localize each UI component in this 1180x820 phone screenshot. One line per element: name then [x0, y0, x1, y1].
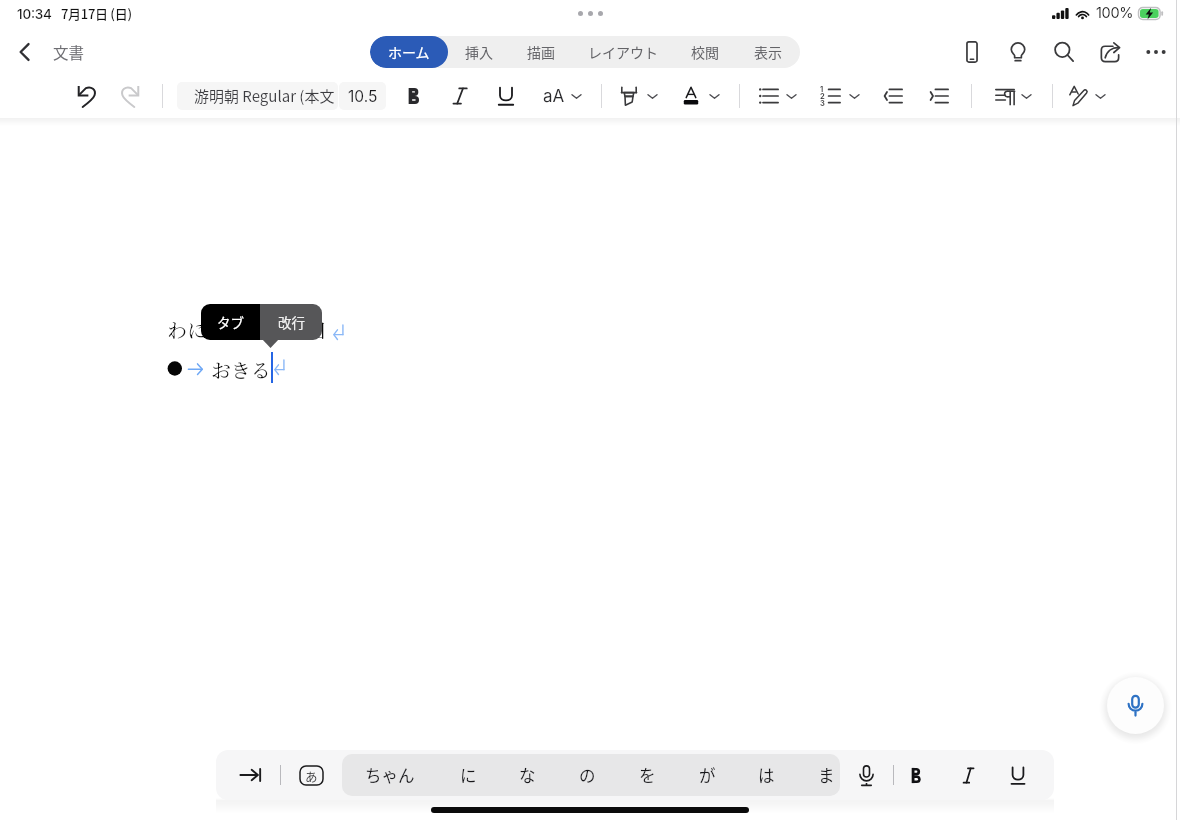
button[interactable]: Text size — [534, 76, 574, 116]
button[interactable]: Dictate — [1107, 677, 1164, 734]
staticText: 游明朝 Regular (本文 — [194, 85, 335, 107]
button[interactable]: 游明朝 Regular (本文 — [177, 82, 338, 110]
staticText: ま — [818, 763, 835, 787]
button[interactable]: 校閲 — [674, 36, 736, 68]
button[interactable]: ま — [799, 754, 853, 796]
staticText: 表示 — [754, 42, 782, 62]
button[interactable]: Phone layout — [949, 29, 995, 75]
other: Italic — [961, 766, 976, 785]
staticText: 1 — [820, 85, 824, 94]
button[interactable]: Voice input — [849, 758, 883, 792]
staticText: の — [579, 763, 596, 787]
button[interactable]: Format painter — [1059, 76, 1099, 116]
other: Tab — [239, 765, 262, 785]
staticText: 校閲 — [691, 42, 719, 62]
button[interactable]: Bold — [899, 758, 933, 792]
button[interactable]: More — [1089, 85, 1111, 107]
staticText: 挿入 — [465, 42, 493, 62]
staticText: 10:34 — [17, 6, 52, 22]
button[interactable]: Underline — [486, 76, 526, 116]
button[interactable]: Font color — [671, 76, 711, 116]
button[interactable]: More — [843, 85, 865, 107]
button[interactable]: Input mode — [299, 765, 324, 786]
button[interactable]: Bullets — [749, 76, 789, 116]
staticText: な — [519, 763, 536, 787]
button[interactable]: Italic — [440, 76, 480, 116]
button[interactable]: More options — [1133, 29, 1179, 75]
button[interactable]: More — [1015, 85, 1037, 107]
staticText: 2 — [820, 92, 825, 101]
button[interactable]: を — [620, 754, 674, 796]
staticText: 改行 — [278, 312, 305, 332]
button[interactable]: Numbering — [811, 76, 851, 116]
button[interactable]: な — [500, 754, 554, 796]
button[interactable]: が — [680, 754, 734, 796]
staticText: 100% — [1096, 4, 1134, 22]
staticText: 7月17日 (日) — [61, 4, 132, 23]
staticText: あ — [305, 767, 318, 785]
button[interactable]: Tab — [233, 758, 267, 792]
staticText: aA — [543, 86, 565, 107]
other: Back — [14, 41, 36, 63]
staticText: ホーム — [388, 42, 430, 62]
staticText: 描画 — [527, 42, 555, 62]
staticText: を — [639, 763, 656, 787]
staticText: レイアウト — [588, 42, 658, 62]
button[interactable]: レイアウト — [572, 36, 674, 68]
staticText: タブ — [217, 312, 244, 332]
button[interactable]: Underline — [1001, 758, 1035, 792]
staticText: 文書 — [53, 41, 85, 63]
staticText: が — [699, 763, 716, 787]
button[interactable]: Tell me — [995, 29, 1041, 75]
button[interactable]: タブ — [201, 304, 260, 340]
button[interactable]: 10.5 — [339, 82, 386, 110]
button[interactable]: Decrease indent — [873, 76, 913, 116]
other: Bold — [908, 766, 924, 785]
button[interactable]: More — [641, 85, 663, 107]
staticText: は — [758, 763, 775, 787]
button[interactable]: 表示 — [736, 36, 800, 68]
button[interactable]: Redo — [110, 76, 150, 116]
button[interactable]: Paragraph — [985, 76, 1025, 116]
button[interactable]: に — [441, 754, 495, 796]
button[interactable]: 描画 — [510, 36, 572, 68]
button[interactable]: Increase indent — [919, 76, 959, 116]
button[interactable]: Share — [1087, 29, 1133, 75]
button[interactable]: More — [780, 85, 802, 107]
button[interactable]: 挿入 — [448, 36, 510, 68]
button[interactable]: Back — [8, 36, 91, 68]
button[interactable]: Undo — [67, 76, 107, 116]
button[interactable]: More — [565, 85, 587, 107]
staticText: 10.5 — [348, 87, 378, 106]
button[interactable]: の — [560, 754, 614, 796]
staticText: 3 — [820, 99, 825, 108]
button[interactable]: Search — [1041, 29, 1087, 75]
staticText: わにたたたたた日 — [167, 315, 327, 344]
button[interactable]: Highlight — [609, 76, 649, 116]
staticText: に — [460, 763, 477, 787]
staticText: ちゃん — [365, 763, 415, 787]
other: Voice input — [859, 765, 874, 786]
button[interactable]: Italic — [951, 758, 985, 792]
button[interactable]: More — [703, 85, 725, 107]
staticText: おきる — [211, 355, 271, 384]
button[interactable]: Bold — [394, 76, 434, 116]
other: Underline — [1009, 766, 1027, 785]
button[interactable]: は — [739, 754, 793, 796]
button[interactable]: ホーム — [370, 36, 448, 68]
button[interactable]: ちゃん — [363, 754, 417, 796]
button[interactable]: 改行 — [260, 304, 322, 340]
